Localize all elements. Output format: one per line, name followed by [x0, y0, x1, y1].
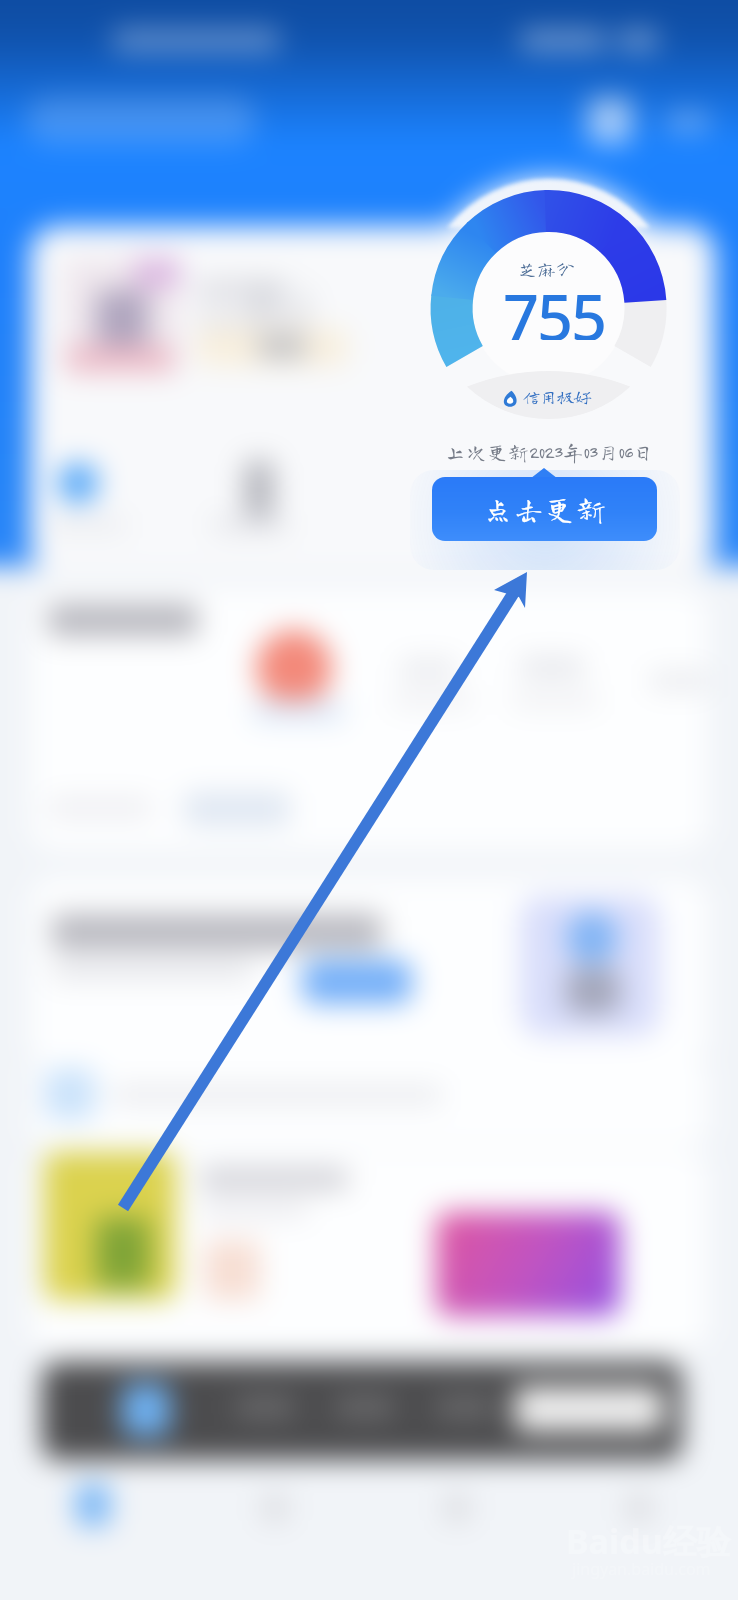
staticText: 上次更新2023年03月06日 [445, 442, 654, 463]
staticText: 755 [498, 274, 610, 340]
staticText: 信用极好 [523, 388, 591, 405]
staticText: 点击更新 [483, 494, 607, 524]
staticText: 芝麻分 [518, 259, 576, 278]
button[interactable]: 点击更新 [432, 477, 657, 541]
